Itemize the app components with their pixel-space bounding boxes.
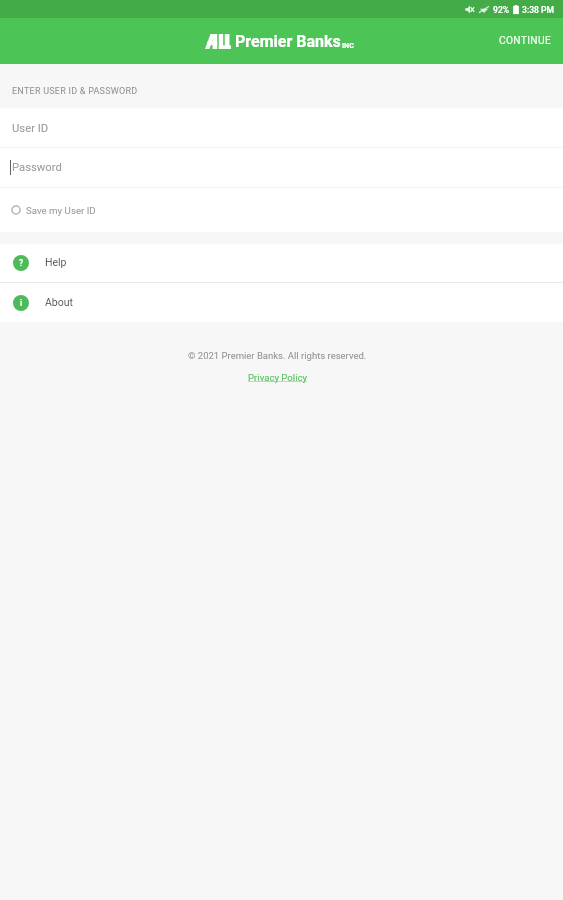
staticText: ENTER USER ID & PASSWORD [12,86,138,97]
staticText: 3:38 PM [522,5,555,15]
button[interactable]: ? [0,244,563,282]
staticText: Privacy Policy [248,372,308,383]
button[interactable]: Privacy Policy [248,372,308,383]
staticText: Password [12,161,62,174]
staticText: Help [45,256,67,268]
button[interactable]: User ID [0,108,563,147]
staticText: About [45,296,73,308]
staticText: ? [19,258,24,268]
staticText: 92% [493,5,510,15]
staticText: Premier Banks [235,32,341,51]
button[interactable]: i [0,283,563,322]
button[interactable]: Save my User ID [0,188,563,232]
staticText: © 2021 Premier Banks. All rights reserve… [188,350,367,361]
staticText: Save my User ID [26,205,96,216]
staticText: User ID [12,122,49,135]
button[interactable]: CONTINUE [486,22,563,60]
staticText: CONTINUE [499,35,552,47]
staticText: INC [342,41,354,49]
button[interactable]: Password [0,148,563,187]
staticText: i [20,298,23,308]
